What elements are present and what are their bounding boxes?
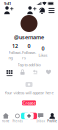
button[interactable]: Friends: [12, 111, 23, 124]
staticText: 9:41: [4, 1, 11, 6]
button[interactable]: Private: [16, 69, 29, 76]
button[interactable]: Videos: [3, 69, 16, 76]
button[interactable]: Notifications: [38, 7, 45, 14]
button[interactable]: Discover people: [28, 7, 36, 14]
staticText: 0: [41, 45, 44, 52]
staticText: Followers: [22, 50, 36, 60]
staticText: Friends: [12, 119, 22, 123]
staticText: Create: [22, 100, 35, 106]
staticText: Home: [2, 119, 10, 123]
staticText: Inbox: [37, 119, 45, 123]
staticText: Profile: [47, 119, 57, 123]
button[interactable]: 12: [8, 42, 22, 60]
button[interactable]: 0: [22, 42, 36, 60]
button[interactable]: Create: [23, 111, 35, 124]
button[interactable]: 0: [36, 45, 50, 58]
button[interactable]: Home: [0, 111, 12, 124]
staticText: @username: [14, 34, 44, 41]
button[interactable]: Profile: [46, 111, 58, 124]
staticText: Following: [8, 50, 21, 60]
button[interactable]: Reposts: [29, 69, 42, 76]
button[interactable]: Inbox: [35, 111, 46, 124]
staticText: 0: [27, 42, 30, 49]
button[interactable]: Liked: [42, 69, 55, 76]
staticText: Likes: [38, 52, 47, 58]
staticText: Tap to add bio: [17, 62, 40, 67]
button[interactable]: Menu: [48, 7, 55, 14]
staticText: 12: [12, 42, 18, 49]
staticText: Your videos will appear here: [4, 90, 53, 95]
button[interactable]: Create: [22, 100, 36, 105]
button[interactable]: Add friends: [3, 7, 15, 14]
